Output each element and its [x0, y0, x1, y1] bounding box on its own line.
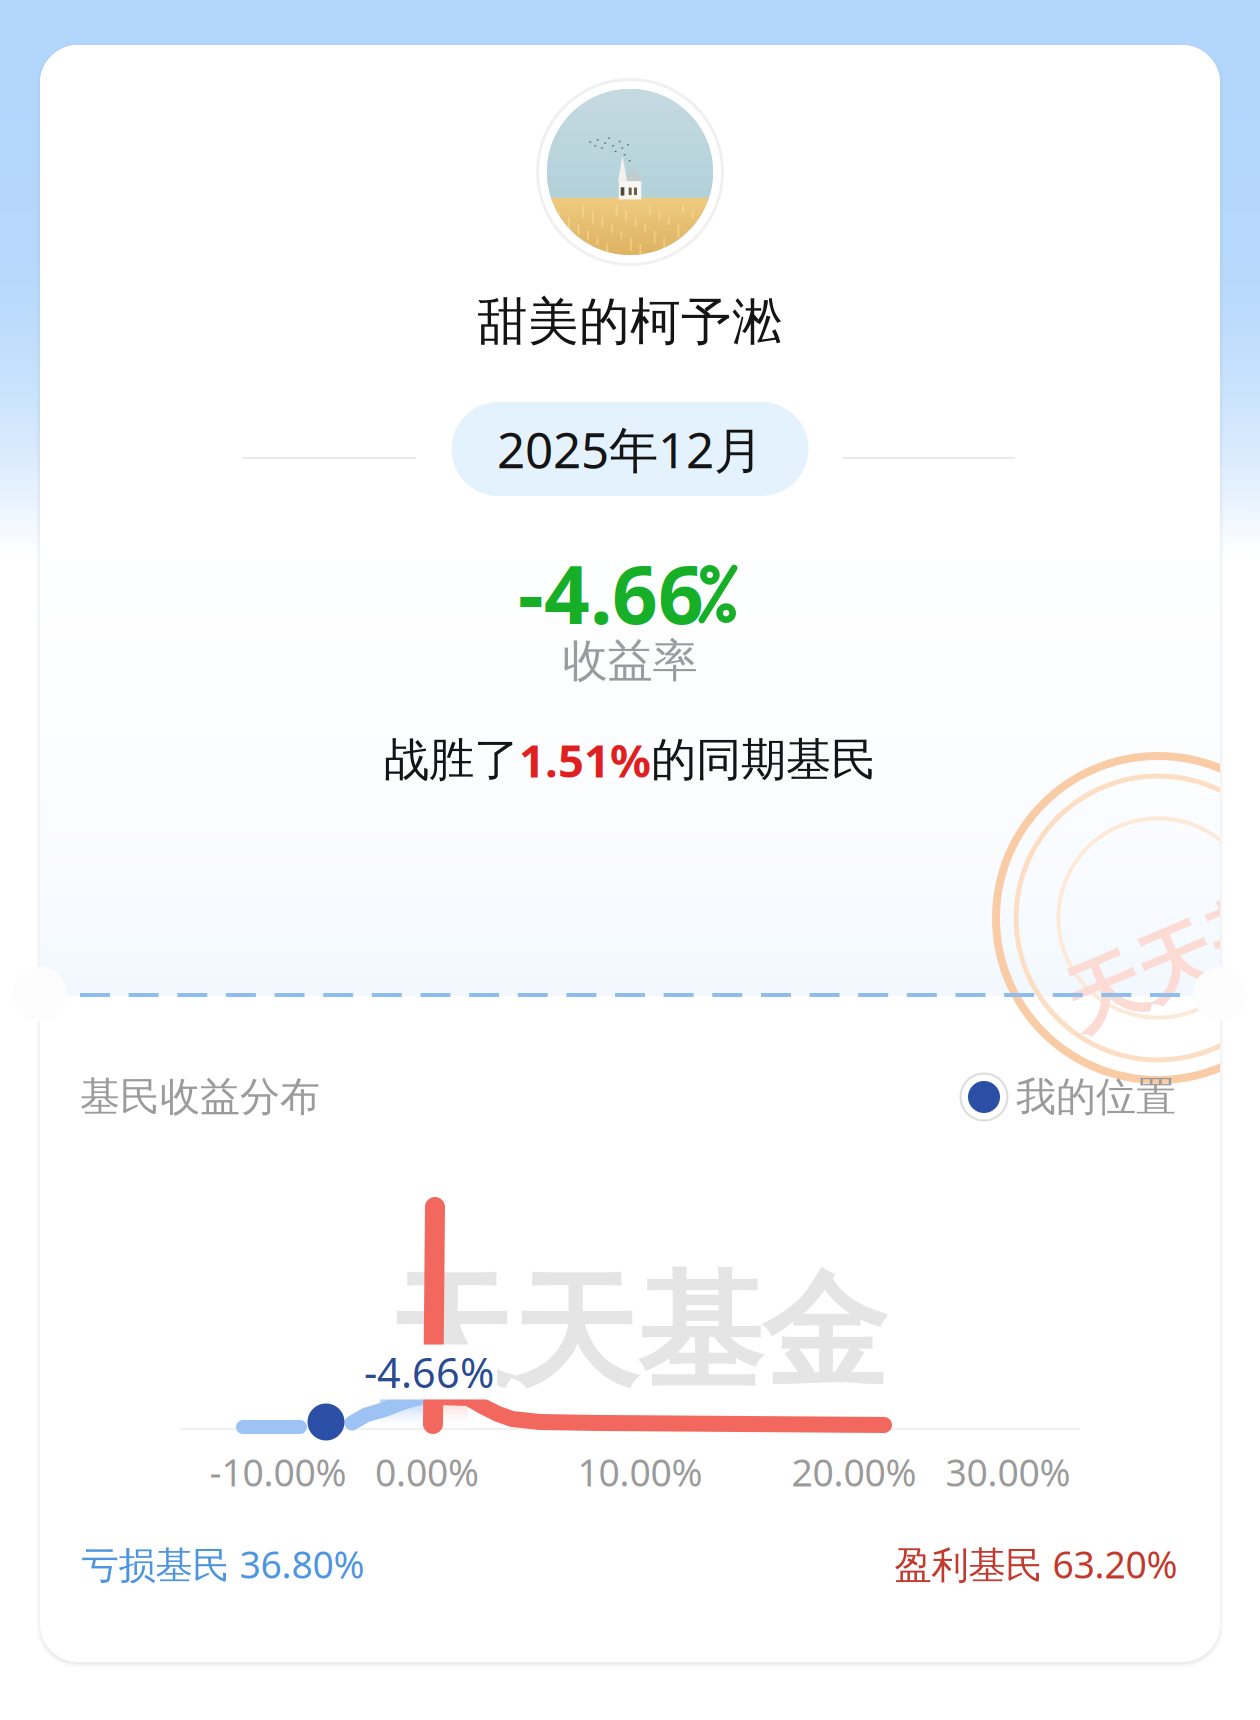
staticText: -10.00% [209, 1447, 346, 1497]
staticText: 基民收益分布 [80, 1072, 320, 1121]
staticText: -4.66% [364, 1345, 494, 1399]
staticText: -4.66 [518, 540, 704, 646]
staticText: 盈利基民 63.20% [894, 1539, 1177, 1589]
button[interactable]: 2025年12月 [451, 402, 808, 496]
staticText: 战胜了 [384, 732, 519, 788]
staticText: 收益率 [562, 633, 697, 689]
staticText: 甜美的柯予淞 [477, 291, 783, 353]
staticText: 天天基金 [387, 1256, 887, 1410]
staticText: 10.00% [577, 1447, 702, 1497]
staticText: 的同期基民 [651, 732, 876, 788]
staticText: 亏损基民 36.80% [81, 1539, 364, 1589]
staticText: 天天基金 [1057, 900, 1260, 995]
staticText: 20.00% [791, 1447, 916, 1497]
staticText: 1.51% [519, 730, 651, 790]
staticText: 30.00% [945, 1447, 1070, 1497]
staticText: 我的位置 [1016, 1072, 1176, 1121]
staticText: 0.00% [375, 1447, 479, 1497]
staticText: 2025年12月 [497, 416, 763, 482]
